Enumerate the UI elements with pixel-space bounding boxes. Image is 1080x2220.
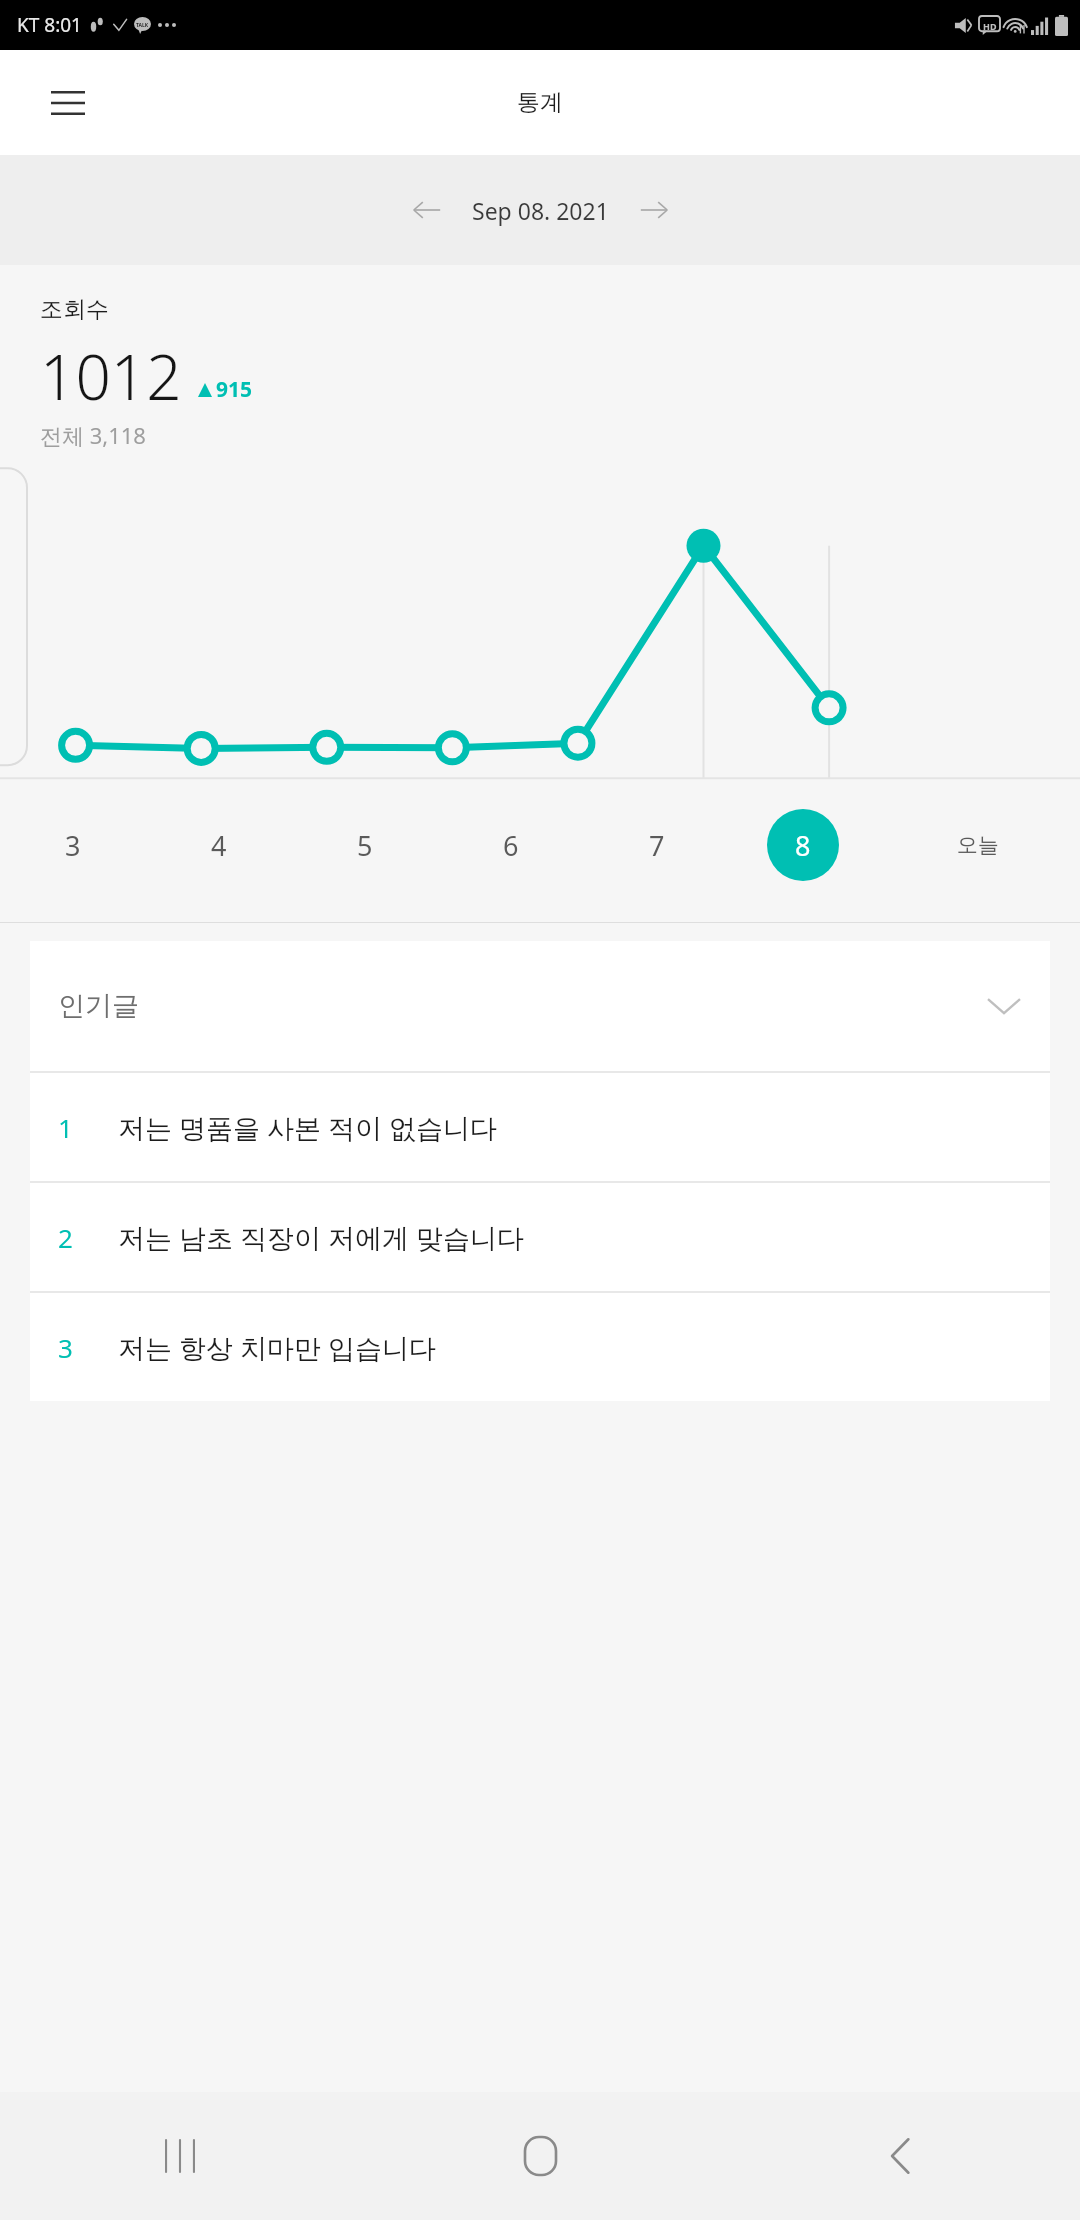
button[interactable]: 2 <box>30 1183 1050 1291</box>
button[interactable]: 인기글 <box>30 941 1050 1071</box>
button[interactable]: 3 <box>30 1293 1050 1401</box>
staticText: 5 <box>357 827 373 864</box>
staticText: 1 <box>58 1110 73 1145</box>
staticText: 저는 명품을 사본 적이 없습니다 <box>118 1109 498 1146</box>
button[interactable]: 1 <box>30 1073 1050 1181</box>
button[interactable]: Back <box>720 2092 1080 2220</box>
button[interactable]: Next day <box>623 179 685 241</box>
staticText: 8 <box>795 827 811 864</box>
staticText: 오늘 <box>957 832 999 858</box>
button[interactable]: Previous day <box>396 179 458 241</box>
staticText: 4 <box>211 827 227 864</box>
staticText: 인기글 <box>58 989 139 1023</box>
staticText: 저는 항상 치마만 입습니다 <box>118 1329 437 1366</box>
button[interactable]: 7 <box>584 780 730 910</box>
staticText: 915 <box>216 375 253 404</box>
staticText: 6 <box>503 827 519 864</box>
staticText: 3 <box>65 827 81 864</box>
staticText: 전체 3,118 <box>40 420 146 450</box>
staticText: KT 8:01 <box>17 12 82 38</box>
button[interactable]: 3 <box>0 780 146 910</box>
button[interactable]: 8 <box>730 780 876 910</box>
staticText: 3 <box>58 1330 73 1365</box>
button[interactable]: 4 <box>146 780 292 910</box>
staticText: 2 <box>58 1220 73 1255</box>
staticText: Sep 08. 2021 <box>472 195 609 226</box>
button[interactable]: Menu <box>40 75 96 131</box>
button[interactable]: Recents <box>0 2092 360 2220</box>
button[interactable]: 오늘 <box>876 780 1080 910</box>
staticText: 통계 <box>517 88 563 117</box>
staticText: 7 <box>649 827 665 864</box>
button[interactable]: Home <box>360 2092 720 2220</box>
staticText: 조회수 <box>40 295 109 324</box>
staticText: 1012 <box>40 334 182 418</box>
button[interactable]: 5 <box>292 780 438 910</box>
staticText: HD <box>983 20 997 32</box>
staticText: 저는 남초 직장이 저에게 맞습니다 <box>118 1219 525 1256</box>
button[interactable]: 6 <box>438 780 584 910</box>
other: Collapse <box>986 988 1022 1024</box>
staticText: TALK <box>136 22 149 29</box>
